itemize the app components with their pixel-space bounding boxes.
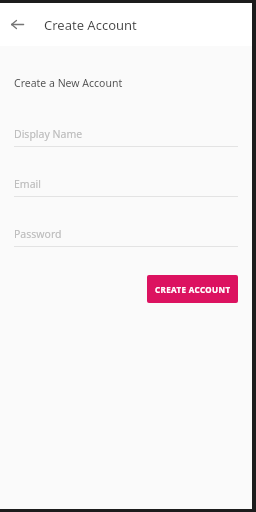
button[interactable]: Email — [14, 176, 238, 197]
staticText: Create Account — [44, 16, 137, 34]
button[interactable]: Back — [7, 14, 28, 35]
button[interactable]: CREATE ACCOUNT — [147, 275, 238, 303]
button[interactable]: Password — [14, 226, 238, 247]
staticText: Email — [14, 177, 41, 191]
button[interactable]: Display Name — [14, 126, 238, 147]
staticText: Display Name — [14, 127, 83, 141]
staticText: CREATE ACCOUNT — [155, 284, 231, 295]
staticText: Create a New Account — [14, 76, 123, 90]
staticText: Password — [14, 227, 62, 241]
